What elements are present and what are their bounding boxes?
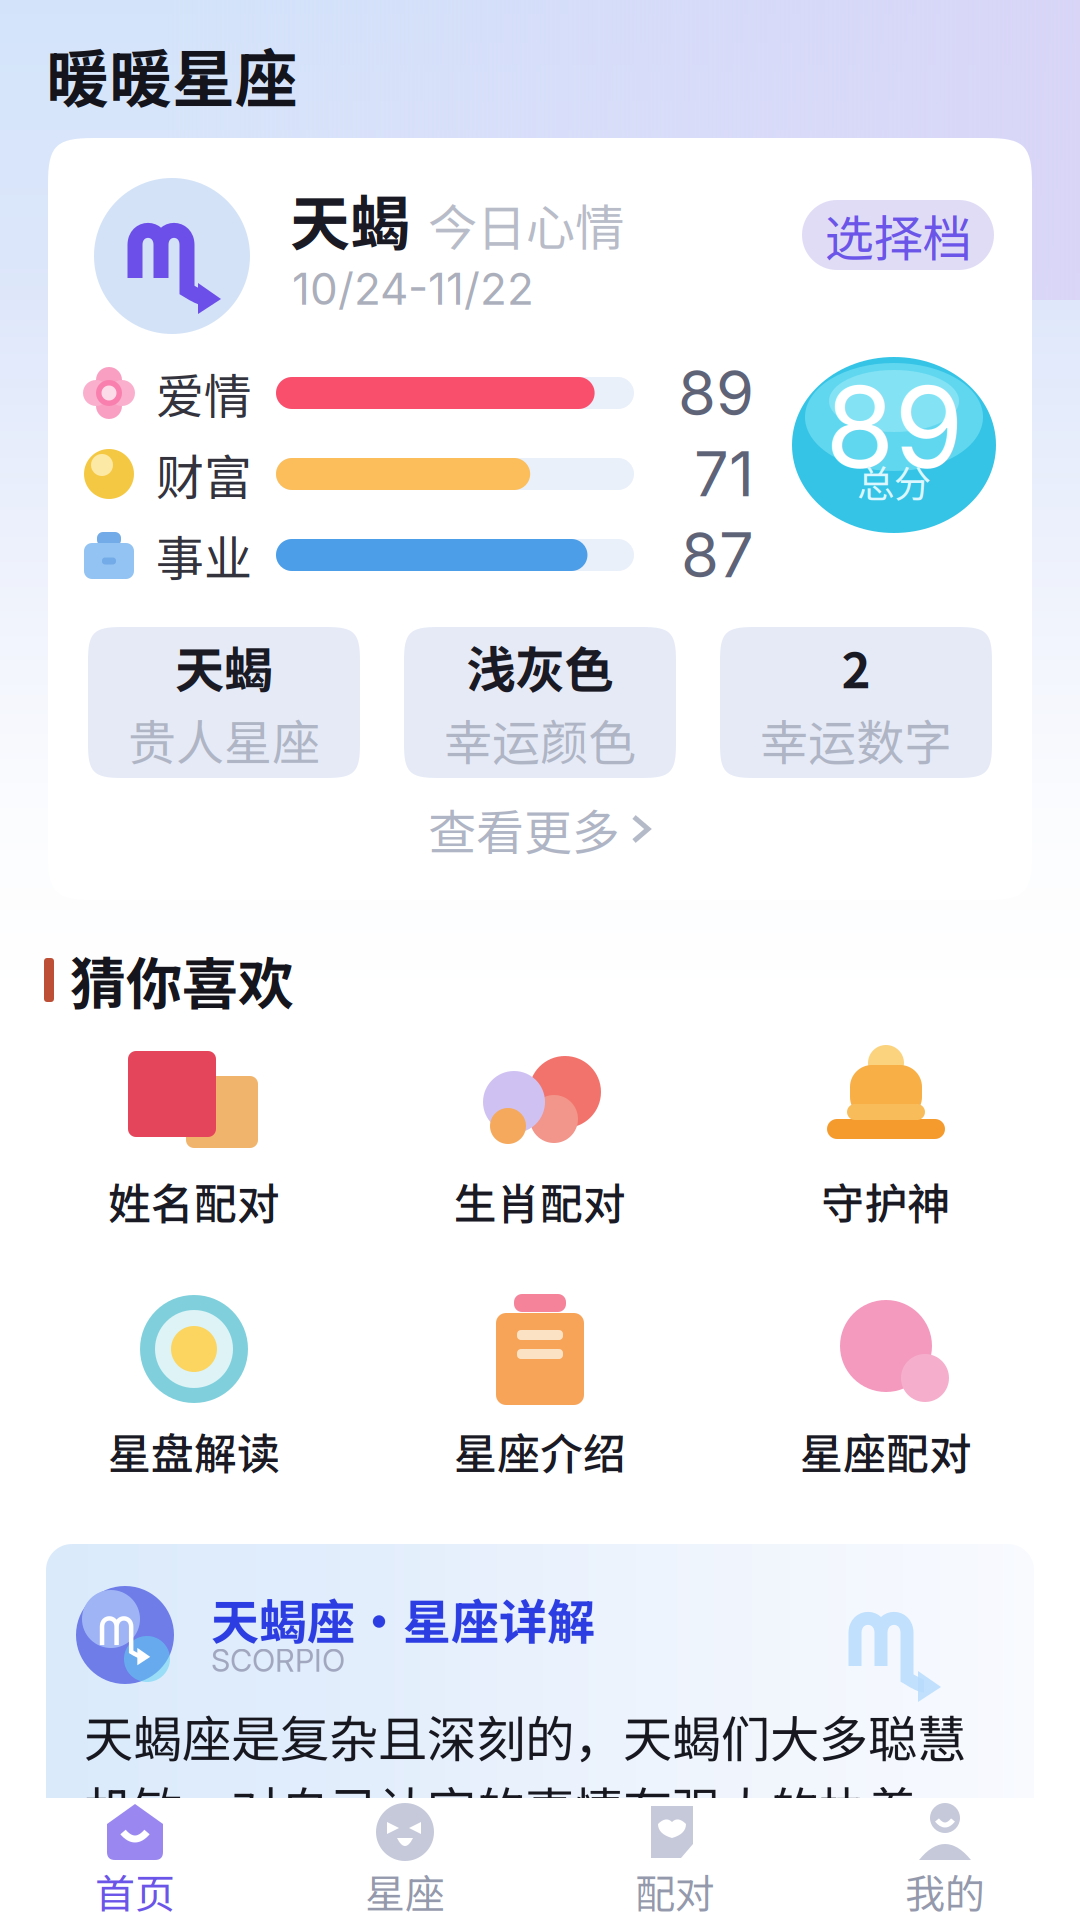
staticText: 查看更多 bbox=[428, 794, 620, 864]
staticText: 生肖配对 bbox=[454, 1170, 626, 1232]
staticText: 星座介绍 bbox=[454, 1420, 626, 1482]
staticText: 天蝎座是复杂且深刻的，天蝎们大多聪慧机敏，对自己认定的事情有强大的执着 bbox=[84, 1700, 966, 1843]
button[interactable]: 2 bbox=[720, 627, 992, 778]
staticText: 星座 bbox=[365, 1862, 445, 1920]
staticText: 星座配对 bbox=[800, 1420, 972, 1482]
staticText: 天蝎 bbox=[175, 631, 273, 702]
staticText: 今日心情 bbox=[428, 188, 624, 260]
button[interactable]: 星盘解读 bbox=[21, 1266, 367, 1510]
staticText: 我的 bbox=[905, 1862, 985, 1920]
staticText: 首页 bbox=[95, 1862, 175, 1920]
staticText: 贵人星座 bbox=[128, 704, 320, 774]
staticText: SCORPIO bbox=[211, 1642, 345, 1679]
button[interactable]: 姓名配对 bbox=[21, 1016, 367, 1260]
button[interactable]: 生肖配对 bbox=[367, 1016, 713, 1260]
staticText: 事业 bbox=[156, 520, 252, 590]
staticText: 选择档 bbox=[824, 199, 971, 271]
staticText: 89 bbox=[678, 356, 754, 430]
staticText: 2 bbox=[841, 631, 870, 702]
staticText: 爱情 bbox=[156, 358, 252, 428]
button[interactable]: 我的 bbox=[810, 1798, 1080, 1920]
staticText: 天蝎座·星座详解 bbox=[211, 1584, 595, 1653]
staticText: 财富 bbox=[156, 439, 252, 509]
staticText: 浅灰色 bbox=[466, 631, 613, 702]
button[interactable]: 星座配对 bbox=[713, 1266, 1059, 1510]
staticText: 幸运数字 bbox=[760, 704, 952, 774]
staticText: 配对 bbox=[635, 1862, 715, 1920]
button[interactable]: 配对 bbox=[540, 1798, 810, 1920]
button[interactable]: 天蝎 bbox=[88, 627, 360, 778]
staticText: 姓名配对 bbox=[108, 1170, 280, 1232]
button[interactable]: 星座介绍 bbox=[367, 1266, 713, 1510]
staticText: 幸运颜色 bbox=[444, 704, 636, 774]
staticText: 总分 bbox=[857, 454, 931, 508]
staticText: 10/24-11/22 bbox=[292, 262, 534, 315]
staticText: 守护神 bbox=[821, 1170, 950, 1232]
staticText: 星盘解读 bbox=[108, 1420, 280, 1482]
button[interactable]: 查看更多 bbox=[390, 794, 690, 864]
staticText: 87 bbox=[681, 518, 754, 592]
button[interactable]: 星座 bbox=[270, 1798, 540, 1920]
staticText: 89 bbox=[825, 359, 963, 495]
staticText: 71 bbox=[694, 437, 754, 511]
staticText: 猜你喜欢 bbox=[70, 939, 294, 1021]
button[interactable]: 守护神 bbox=[713, 1016, 1059, 1260]
staticText: 天蝎 bbox=[290, 176, 410, 263]
staticText: 暖暖星座 bbox=[46, 29, 298, 120]
button[interactable]: 浅灰色 bbox=[404, 627, 676, 778]
button[interactable]: 选择档 bbox=[802, 200, 994, 270]
button[interactable]: 首页 bbox=[0, 1798, 270, 1920]
